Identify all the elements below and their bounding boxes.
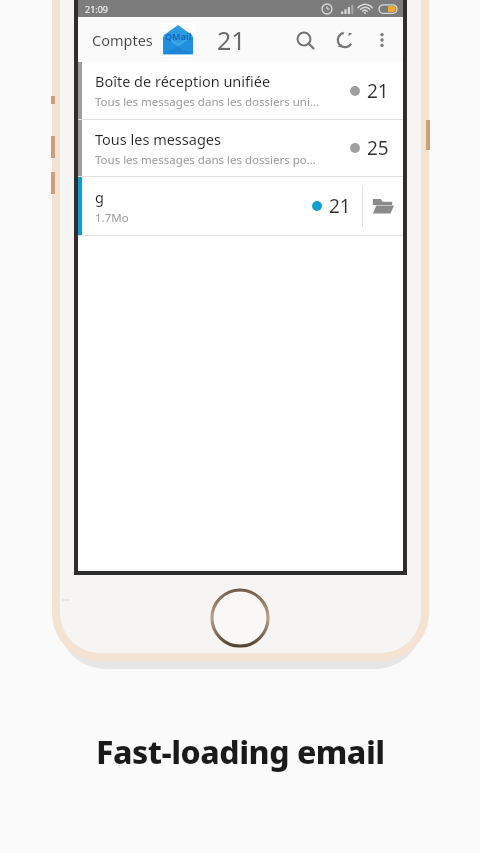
staticText: Comptes: [92, 30, 153, 50]
button[interactable]: More options: [365, 23, 399, 57]
button[interactable]: Folders: [363, 177, 403, 235]
staticText: 25: [367, 135, 389, 161]
staticText: g: [95, 187, 104, 207]
button[interactable]: Search: [285, 20, 325, 60]
staticText: Tous les messages dans les dossiers uni…: [95, 94, 319, 110]
staticText: 21: [329, 193, 351, 219]
staticText: 21: [217, 23, 246, 57]
button[interactable]: g: [78, 177, 403, 235]
staticText: Boîte de réception unifiée: [95, 71, 271, 91]
button[interactable]: Refresh: [325, 20, 365, 60]
staticText: 1.7Mo: [95, 210, 129, 226]
staticText: Tous les messages: [95, 129, 221, 149]
staticText: Fast-loading email: [96, 730, 385, 774]
staticText: QMail: [165, 30, 192, 42]
staticText: 21: [367, 78, 389, 104]
button[interactable]: Tous les messages: [78, 120, 403, 176]
staticText: 21:09: [85, 3, 109, 15]
button[interactable]: QMail: [159, 21, 197, 59]
staticText: Tous les messages dans les dossiers po…: [95, 152, 316, 168]
button[interactable]: Boîte de réception unifiée: [78, 62, 403, 119]
button[interactable]: Comptes: [78, 22, 159, 58]
